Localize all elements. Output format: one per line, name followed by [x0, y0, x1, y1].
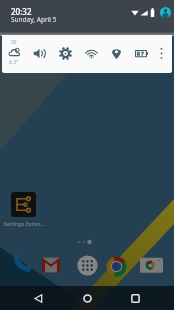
button[interactable]: Brightness: [53, 43, 77, 63]
button[interactable]: Gmail: [42, 256, 60, 274]
staticText: SE: [11, 39, 17, 46]
button[interactable]: Wi-Fi: [79, 43, 103, 63]
button[interactable]: Recents: [117, 288, 154, 308]
staticText: 6.3°: [9, 59, 19, 66]
button[interactable]: Volume: [27, 43, 51, 63]
button[interactable]: Battery 97%: [129, 43, 153, 63]
button[interactable]: Home: [69, 288, 106, 308]
button[interactable]: Apps: [77, 255, 98, 276]
button[interactable]: Back: [20, 288, 57, 308]
staticText: 20:32: [11, 6, 32, 17]
button[interactable]: Camera: [140, 256, 163, 279]
button[interactable]: Phone: [11, 254, 32, 275]
button[interactable]: Settings Extended: [11, 192, 36, 217]
button[interactable]: Weather 6.3 degrees: [3, 39, 25, 66]
staticText: Sunday, April 5: [11, 15, 57, 24]
button[interactable]: More settings: [153, 43, 169, 63]
button[interactable]: Chrome: [106, 256, 127, 277]
staticText: Settings Exten…: [0, 220, 48, 227]
button[interactable]: User account: [160, 7, 171, 18]
button[interactable]: Location: [104, 43, 128, 63]
